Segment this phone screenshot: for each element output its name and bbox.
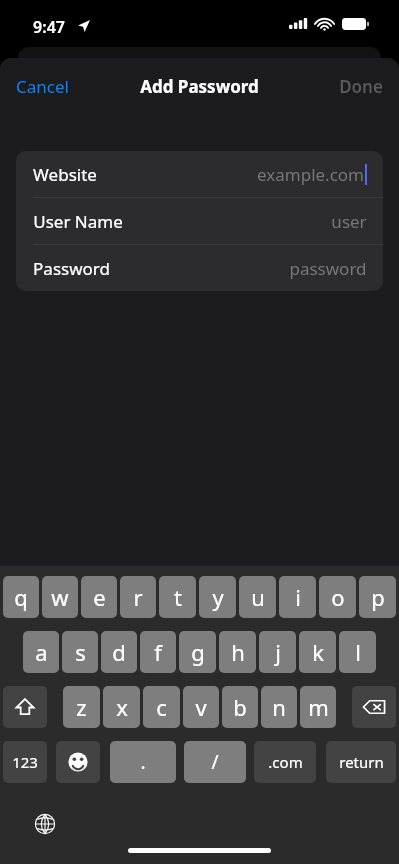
- staticText: j: [275, 637, 281, 667]
- staticText: Done: [339, 75, 383, 98]
- staticText: example.com: [257, 163, 364, 186]
- button[interactable]: f: [140, 631, 176, 673]
- button[interactable]: 123: [3, 741, 47, 783]
- button[interactable]: .com: [254, 741, 316, 783]
- button[interactable]: q: [3, 576, 39, 618]
- staticText: Add Password: [140, 75, 259, 98]
- button[interactable]: w: [42, 576, 78, 618]
- staticText: z: [76, 692, 87, 722]
- staticText: v: [195, 692, 207, 722]
- staticText: h: [231, 637, 245, 667]
- staticText: User Name: [33, 210, 123, 233]
- button[interactable]: m: [300, 686, 336, 728]
- staticText: user: [331, 210, 367, 233]
- staticText: password: [289, 257, 367, 280]
- button[interactable]: y: [199, 576, 236, 618]
- button[interactable]: /: [184, 741, 246, 783]
- staticText: x: [116, 692, 128, 722]
- staticText: g: [191, 637, 205, 667]
- staticText: return: [339, 752, 384, 772]
- button[interactable]: Shift: [3, 686, 47, 728]
- button[interactable]: r: [120, 576, 156, 618]
- staticText: o: [331, 582, 345, 612]
- staticText: a: [35, 637, 48, 667]
- button[interactable]: x: [103, 686, 140, 728]
- staticText: t: [174, 582, 182, 612]
- staticText: .: [140, 749, 146, 775]
- staticText: Password: [33, 257, 110, 280]
- button[interactable]: p: [359, 576, 396, 618]
- button[interactable]: Cancel: [0, 67, 85, 106]
- button[interactable]: l: [339, 631, 376, 673]
- button[interactable]: o: [319, 576, 356, 618]
- staticText: q: [14, 582, 28, 612]
- staticText: d: [112, 637, 126, 667]
- staticText: f: [154, 637, 162, 667]
- button[interactable]: i: [279, 576, 316, 618]
- button[interactable]: e: [81, 576, 117, 618]
- staticText: s: [75, 637, 86, 667]
- staticText: Website: [33, 163, 97, 186]
- staticText: u: [251, 582, 265, 612]
- button[interactable]: Website: [16, 151, 383, 197]
- staticText: m: [308, 692, 329, 722]
- button[interactable]: b: [222, 686, 258, 728]
- button[interactable]: Emoji: [56, 741, 100, 783]
- staticText: i: [295, 582, 301, 612]
- button[interactable]: a: [23, 631, 59, 673]
- button[interactable]: n: [261, 686, 297, 728]
- staticText: p: [371, 582, 385, 612]
- button[interactable]: User Name: [16, 198, 383, 244]
- staticText: y: [212, 582, 224, 612]
- button[interactable]: Switch keyboard: [25, 804, 65, 844]
- button[interactable]: g: [179, 631, 216, 673]
- button[interactable]: v: [183, 686, 219, 728]
- staticText: k: [312, 637, 324, 667]
- staticText: /: [211, 749, 219, 775]
- button[interactable]: s: [62, 631, 98, 673]
- button[interactable]: k: [299, 631, 336, 673]
- staticText: Cancel: [16, 75, 69, 98]
- button[interactable]: t: [159, 576, 196, 618]
- button[interactable]: d: [101, 631, 137, 673]
- staticText: e: [93, 582, 106, 612]
- staticText: c: [156, 692, 167, 722]
- button[interactable]: u: [239, 576, 276, 618]
- button[interactable]: h: [219, 631, 256, 673]
- staticText: n: [272, 692, 286, 722]
- button[interactable]: Backspace: [352, 686, 396, 728]
- button[interactable]: j: [259, 631, 296, 673]
- button[interactable]: z: [63, 686, 100, 728]
- button[interactable]: Password: [16, 245, 383, 291]
- button[interactable]: c: [143, 686, 180, 728]
- button[interactable]: Done: [323, 67, 399, 106]
- button[interactable]: return: [326, 741, 396, 783]
- button[interactable]: .: [110, 741, 176, 783]
- staticText: r: [133, 582, 143, 612]
- staticText: b: [233, 692, 247, 722]
- staticText: 9:47: [33, 16, 65, 38]
- staticText: l: [355, 637, 361, 667]
- staticText: w: [51, 582, 69, 612]
- staticText: 123: [12, 752, 38, 772]
- staticText: .com: [268, 752, 303, 772]
